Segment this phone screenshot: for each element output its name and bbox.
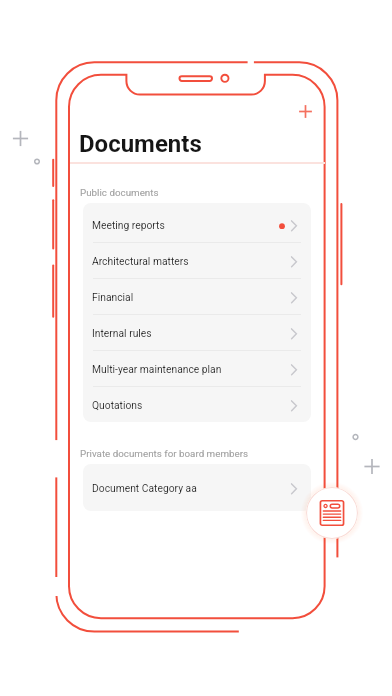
- staticText: Quotations: [92, 399, 143, 411]
- button[interactable]: New document: [306, 487, 358, 539]
- button[interactable]: Document Category aa: [83, 464, 311, 511]
- button[interactable]: Meeting reports: [83, 207, 311, 243]
- button[interactable]: Financial: [83, 279, 311, 315]
- staticText: Multi-year maintenance plan: [92, 363, 222, 375]
- staticText: Meeting reports: [92, 219, 165, 231]
- button[interactable]: Quotations: [83, 387, 311, 422]
- button[interactable]: Documents: [79, 130, 202, 158]
- staticText: Document Category aa: [92, 482, 197, 494]
- button[interactable]: Architectural matters: [83, 243, 311, 279]
- button[interactable]: Internal rules: [83, 315, 311, 351]
- staticText: Financial: [92, 291, 134, 303]
- staticText: Architectural matters: [92, 255, 189, 267]
- button[interactable]: Multi-year maintenance plan: [83, 351, 311, 387]
- staticText: Private documents for board members: [80, 448, 249, 459]
- staticText: Internal rules: [92, 327, 152, 339]
- staticText: Documents: [79, 130, 202, 158]
- staticText: Public documents: [80, 187, 159, 198]
